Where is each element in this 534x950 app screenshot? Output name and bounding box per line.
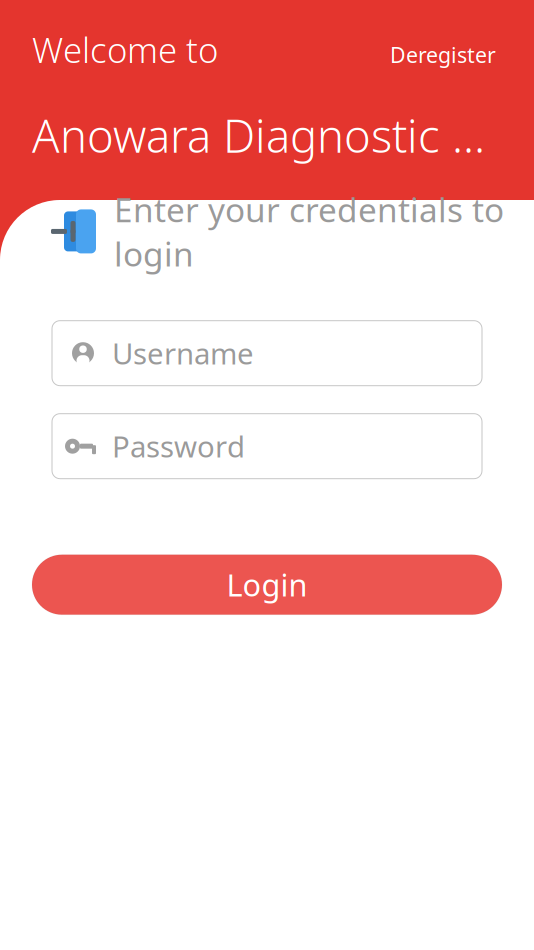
button[interactable]: Password: [52, 414, 482, 479]
staticText: Anowara Diagnostic …: [32, 105, 485, 165]
button[interactable]: Deregister: [384, 35, 502, 75]
staticText: Login: [226, 564, 307, 605]
staticText: Username: [112, 334, 254, 373]
staticText: Deregister: [390, 41, 496, 69]
staticText: Welcome to: [32, 27, 218, 73]
button[interactable]: Login: [32, 555, 502, 615]
button[interactable]: Username: [52, 321, 482, 386]
staticText: Enter your credentials to login: [114, 187, 504, 276]
staticText: Password: [112, 427, 245, 466]
